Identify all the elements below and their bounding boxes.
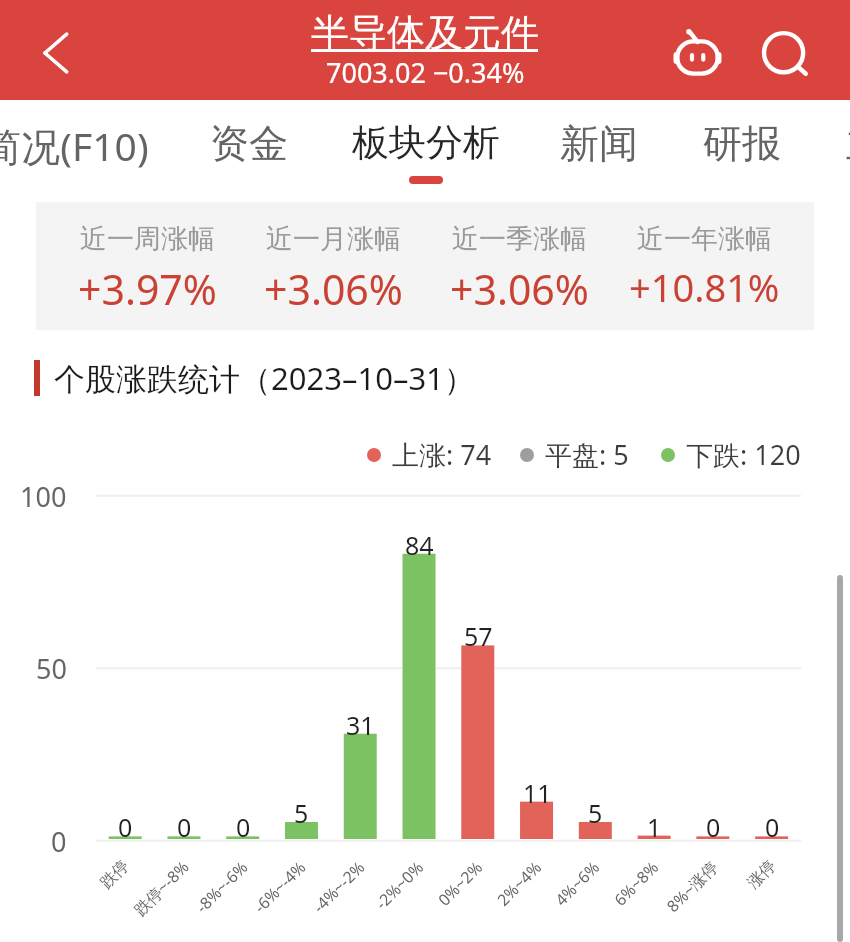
staticText: 8%~涨停: [662, 856, 722, 917]
button[interactable]: 资金: [161, 100, 337, 202]
staticText: 近一周涨幅: [80, 222, 215, 256]
button[interactable]: 简况(F10): [0, 100, 153, 202]
staticText: 0: [236, 810, 251, 844]
staticText: 4%~6%: [550, 856, 604, 910]
staticText: 0: [177, 810, 192, 844]
staticText: 31: [346, 708, 375, 742]
staticText: 0: [706, 810, 721, 844]
staticText: 主力: [846, 119, 850, 168]
staticText: 57: [464, 619, 493, 653]
staticText: 0: [51, 823, 67, 860]
button[interactable]: 板块分析: [338, 100, 514, 202]
staticText: 板块分析: [352, 119, 500, 166]
staticText: 个股涨跌统计（2023–10–31）: [54, 357, 475, 399]
staticText: -2%~0%: [371, 856, 429, 914]
button[interactable]: 近一周涨幅: [37, 222, 257, 317]
staticText: 跌停~-8%: [129, 856, 193, 920]
button[interactable]: 研报: [654, 100, 830, 202]
staticText: 1: [647, 810, 662, 844]
staticText: 跌停: [96, 856, 133, 893]
staticText: 11: [523, 776, 552, 810]
staticText: 新闻: [560, 119, 638, 168]
staticText: 0: [765, 810, 780, 844]
staticText: 0%~2%: [433, 856, 487, 910]
button[interactable]: 新闻: [511, 100, 687, 202]
staticText: 50: [36, 650, 67, 687]
staticText: 84: [405, 528, 434, 562]
button[interactable]: Search: [740, 30, 832, 78]
staticText: 资金: [210, 119, 288, 168]
staticText: 近一季涨幅: [452, 222, 587, 256]
button[interactable]: 平盘: 5: [520, 436, 629, 473]
staticText: 平盘: 5: [545, 436, 629, 473]
staticText: 上涨: 74: [392, 436, 492, 473]
staticText: 涨停: [743, 856, 780, 893]
staticText: +3.06%: [264, 261, 403, 317]
staticText: 研报: [703, 119, 781, 168]
staticText: -6%~-4%: [249, 856, 310, 917]
staticText: 简况(F10): [0, 119, 149, 172]
staticText: 6%~8%: [609, 856, 663, 910]
staticText: 0: [118, 810, 133, 844]
button[interactable]: AI assistant: [649, 28, 745, 76]
staticText: -4%~-2%: [308, 856, 369, 917]
staticText: +10.81%: [629, 261, 780, 313]
staticText: 下跌: 120: [686, 436, 801, 473]
button[interactable]: 下跌: 120: [661, 436, 801, 473]
staticText: -8%~-6%: [191, 856, 252, 917]
staticText: +3.06%: [450, 261, 589, 317]
button[interactable]: Back: [10, 0, 102, 100]
button[interactable]: 主力: [797, 100, 850, 202]
staticText: 近一年涨幅: [637, 222, 772, 256]
staticText: 5: [588, 796, 603, 830]
staticText: 7003.02 −0.34%: [326, 54, 525, 91]
button[interactable]: 近一年涨幅: [594, 222, 814, 313]
staticText: 2%~4%: [492, 856, 546, 910]
button[interactable]: 上涨: 74: [367, 436, 492, 473]
staticText: 半导体及元件: [311, 9, 539, 57]
button[interactable]: 近一季涨幅: [409, 222, 629, 317]
staticText: 近一月涨幅: [266, 222, 401, 256]
staticText: 100: [20, 478, 67, 515]
button[interactable]: 近一月涨幅: [223, 222, 443, 317]
staticText: +3.97%: [78, 261, 217, 317]
staticText: 5: [294, 796, 309, 830]
